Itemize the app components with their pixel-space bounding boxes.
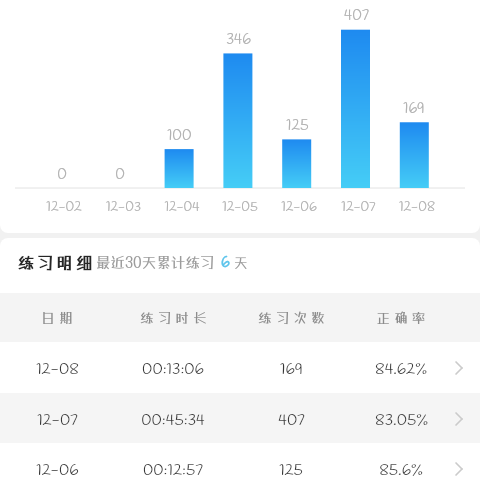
staticText: 12-07 [341, 198, 376, 216]
staticText: 0 [57, 165, 67, 185]
other: View details [455, 412, 463, 426]
staticText: 天 [234, 255, 248, 271]
staticText: 00:45:34 [141, 410, 205, 431]
button[interactable]: 12-07 [0, 393, 480, 444]
staticText: 169 [280, 359, 303, 380]
button[interactable]: 12-06 [0, 443, 480, 480]
staticText: 12-06 [36, 460, 79, 480]
staticText: 125 [286, 116, 309, 136]
staticText: 12-06 [281, 198, 317, 216]
staticText: 日期 [41, 310, 77, 326]
other: View details [455, 361, 463, 375]
staticText: 0 [115, 165, 125, 185]
button[interactable]: 12-08 [0, 342, 480, 393]
staticText: 最近30天累计练习 [96, 254, 215, 271]
staticText: 12-08 [36, 359, 79, 380]
staticText: 00:12:57 [143, 460, 203, 480]
staticText: 练习时长 [140, 310, 211, 326]
staticText: 12-08 [399, 198, 435, 216]
staticText: 正确率 [376, 310, 430, 326]
staticText: 169 [403, 99, 425, 119]
staticText: 12-05 [222, 198, 258, 216]
staticText: 12-02 [46, 198, 82, 216]
staticText: 00:13:06 [142, 359, 204, 380]
staticText: 练习明细 [18, 253, 96, 272]
staticText: 85.6% [379, 460, 423, 480]
staticText: 346 [226, 30, 251, 50]
staticText: 100 [167, 126, 192, 146]
staticText: 练习次数 [258, 310, 329, 326]
staticText: 83.05% [375, 410, 428, 431]
staticText: 12-03 [106, 198, 141, 216]
staticText: 12-07 [37, 410, 78, 431]
other: View details [455, 462, 463, 476]
staticText: 6 [221, 253, 230, 273]
staticText: 407 [278, 410, 305, 431]
staticText: 125 [279, 460, 303, 480]
staticText: 12-04 [164, 198, 200, 216]
staticText: 84.62% [375, 359, 427, 380]
staticText: 407 [344, 6, 369, 26]
